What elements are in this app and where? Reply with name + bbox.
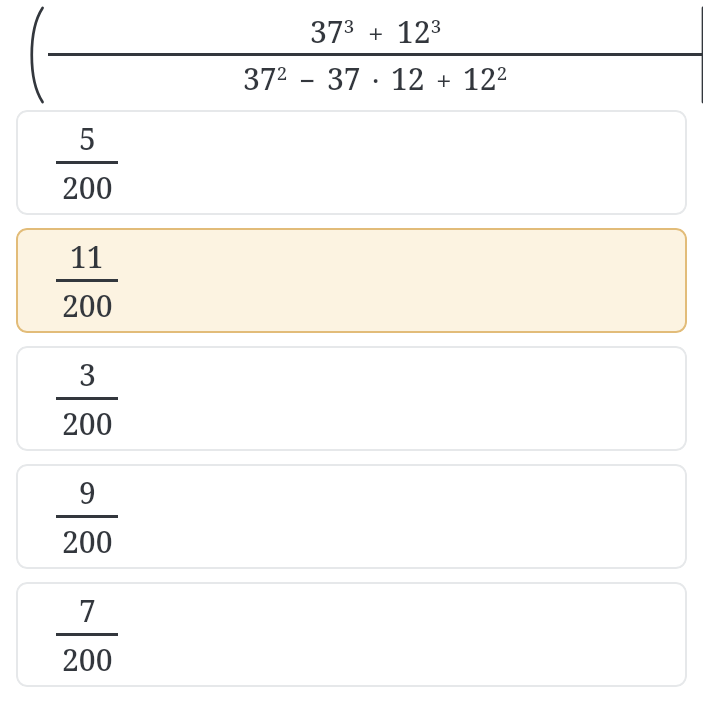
staticText: + — [368, 14, 384, 52]
staticText: + — [436, 61, 452, 99]
button[interactable]: 3 — [16, 346, 687, 451]
staticText: 122 — [463, 58, 508, 99]
staticText: 3 — [79, 354, 96, 395]
staticText: 37 — [327, 58, 361, 99]
staticText: 372 — [243, 58, 288, 99]
staticText: 200 — [62, 167, 113, 208]
staticText: · — [372, 61, 380, 99]
staticText: 200 — [62, 285, 113, 326]
staticText: − — [299, 61, 316, 99]
staticText: 200 — [62, 403, 113, 444]
staticText: 7 — [79, 590, 96, 631]
button[interactable]: 7 — [16, 582, 687, 687]
button[interactable]: 5 — [16, 110, 687, 215]
staticText: 9 — [79, 472, 96, 513]
staticText: 200 — [62, 639, 113, 680]
staticText: 11 — [70, 236, 104, 277]
staticText: 200 — [62, 521, 113, 562]
staticText: 12 — [391, 58, 425, 99]
staticText: 5 — [79, 118, 96, 159]
button[interactable]: 11 — [16, 228, 687, 333]
button[interactable]: 9 — [16, 464, 687, 569]
staticText: 123 — [397, 11, 442, 52]
staticText: 373 — [310, 11, 355, 52]
